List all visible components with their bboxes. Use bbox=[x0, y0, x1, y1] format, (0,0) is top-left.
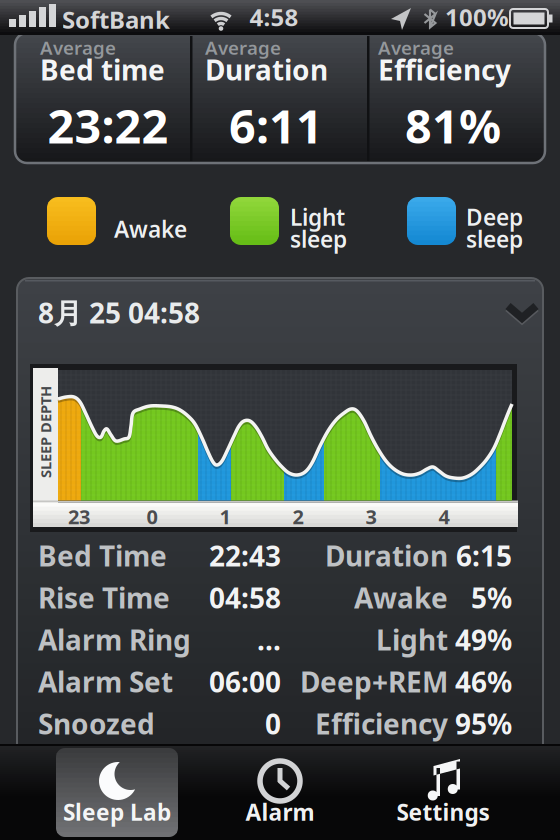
button[interactable]: 8月 25 bbox=[17, 278, 543, 340]
staticText: Duration bbox=[205, 51, 328, 88]
staticText: 04:58 bbox=[209, 579, 281, 616]
staticText: 81% bbox=[405, 94, 501, 156]
staticText: 3 bbox=[365, 503, 376, 530]
staticText: Efficiency bbox=[378, 51, 511, 88]
staticText: Awake bbox=[114, 214, 187, 244]
staticText: 4:58 bbox=[249, 1, 298, 33]
staticText: 23:22 bbox=[47, 94, 168, 156]
button[interactable]: Sleep Lab bbox=[56, 748, 178, 837]
staticText: 1 bbox=[219, 503, 230, 530]
staticText: Rise Time bbox=[38, 579, 170, 616]
staticText: Duration bbox=[325, 537, 448, 574]
staticText: Average bbox=[378, 35, 454, 60]
staticText: 0 bbox=[146, 503, 157, 530]
staticText: Sleep Lab bbox=[63, 797, 171, 827]
staticText: Bed Time bbox=[38, 537, 167, 574]
staticText: 04:58 bbox=[128, 294, 200, 331]
staticText: 2 bbox=[292, 503, 303, 530]
button[interactable]: Alarm bbox=[187, 748, 374, 837]
button[interactable]: Settings bbox=[373, 748, 560, 837]
staticText: 0 bbox=[265, 705, 281, 742]
staticText: 46% bbox=[455, 663, 512, 700]
staticText: Light bbox=[290, 202, 345, 232]
staticText: Settings bbox=[396, 797, 489, 827]
staticText: Alarm Ring bbox=[38, 621, 191, 658]
staticText: 5% bbox=[471, 579, 512, 616]
staticText: Average bbox=[40, 35, 116, 60]
staticText: Efficiency bbox=[315, 705, 448, 742]
staticText: 6:15 bbox=[456, 537, 512, 574]
staticText: Snoozed bbox=[38, 705, 155, 742]
staticText: 23 bbox=[68, 503, 90, 530]
staticText: 4 bbox=[438, 503, 449, 530]
staticText: Awake bbox=[354, 579, 448, 616]
staticText: sleep bbox=[290, 224, 347, 254]
staticText: 49% bbox=[455, 621, 512, 658]
staticText: Light bbox=[376, 621, 448, 658]
staticText: Alarm Set bbox=[38, 663, 173, 700]
staticText: Deep+REM bbox=[300, 663, 448, 700]
staticText: Alarm bbox=[245, 797, 314, 827]
staticText: 22:43 bbox=[209, 537, 281, 574]
staticText: Average bbox=[205, 35, 281, 60]
staticText: 95% bbox=[455, 705, 512, 742]
staticText: ... bbox=[257, 621, 281, 658]
staticText: 100% bbox=[445, 1, 509, 33]
staticText: 8月 25 bbox=[38, 294, 121, 331]
staticText: 6:11 bbox=[229, 94, 323, 156]
staticText: sleep bbox=[466, 224, 523, 254]
staticText: SLEEP DEPTH bbox=[0, 422, 91, 442]
staticText: SoftBank bbox=[62, 3, 170, 35]
staticText: Bed time bbox=[40, 51, 165, 88]
staticText: 06:00 bbox=[209, 663, 281, 700]
staticText: Deep bbox=[466, 202, 523, 232]
